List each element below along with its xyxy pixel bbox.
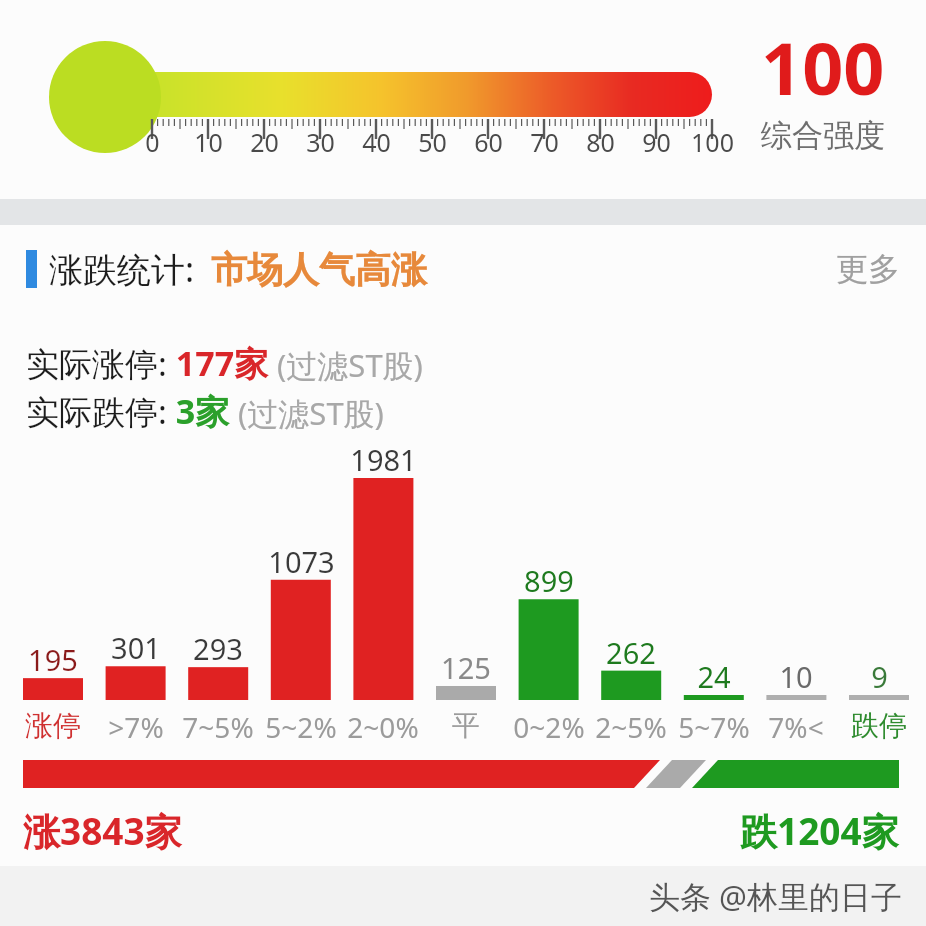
staticText: (过滤ST股) [269,344,423,386]
staticText: 70 [530,125,559,159]
staticText: 60 [474,125,503,159]
staticText: 实际跌停: [26,389,167,434]
staticText: 293 [193,629,243,668]
staticText: 3家 [167,388,230,434]
button[interactable]: 0~2% [505,708,593,746]
staticText: 50 [418,125,447,159]
staticText: 80 [586,125,615,159]
button[interactable]: 涨跌统计: [0,238,926,300]
staticText: 125 [441,648,491,687]
button[interactable]: 更多 [836,249,900,289]
staticText: >7% [108,708,164,746]
button[interactable]: 7~5% [174,708,262,746]
staticText: 综合强度 [761,116,885,155]
staticText: 177家 [167,340,269,386]
staticText: 9 [871,657,888,696]
staticText: 301 [111,628,161,667]
staticText: 涨停 [25,708,81,743]
staticText: 跌停 [851,708,907,743]
staticText: 实际涨停: [26,341,167,386]
staticText: (过滤ST股) [230,392,384,434]
staticText: 7%< [768,708,824,746]
staticText: 1981 [350,440,417,479]
staticText: 0~2% [513,708,585,746]
staticText: 更多 [836,249,900,289]
button[interactable]: >7% [92,708,180,746]
staticText: 899 [524,561,574,600]
button[interactable]: 5~7% [670,708,758,746]
staticText: 跌1204家 [740,805,899,856]
button[interactable]: 2~5% [587,708,675,746]
staticText: 1073 [268,542,335,581]
staticText: 10 [779,657,813,696]
staticText: 100 [761,18,885,116]
staticText: 195 [28,640,78,679]
staticText: 涨跌统计: [49,246,195,292]
button[interactable]: 平 [422,708,510,743]
staticText: 5~2% [265,708,337,746]
staticText: 0 [145,125,160,159]
staticText: 涨3843家 [23,805,182,856]
staticText: 262 [606,633,656,672]
staticText: 7~5% [182,708,254,746]
staticText: 40 [362,125,391,159]
staticText: 10 [194,125,223,159]
staticText: 市场人气高涨 [211,247,427,292]
staticText: 90 [642,125,671,159]
staticText: 2~5% [595,708,667,746]
button[interactable]: 跌停 [835,708,923,743]
staticText: 平 [452,708,480,743]
staticText: 30 [306,125,335,159]
staticText: 100 [691,125,734,159]
button[interactable]: 7%< [752,708,840,746]
button[interactable]: 涨停 [9,708,97,743]
button[interactable]: 5~2% [257,708,345,746]
staticText: 5~7% [678,708,750,746]
button[interactable]: 2~0% [339,708,427,746]
staticText: 24 [697,657,731,696]
staticText: 头条 @林里的日子 [649,875,902,917]
staticText: 20 [250,125,279,159]
staticText: 2~0% [347,708,419,746]
